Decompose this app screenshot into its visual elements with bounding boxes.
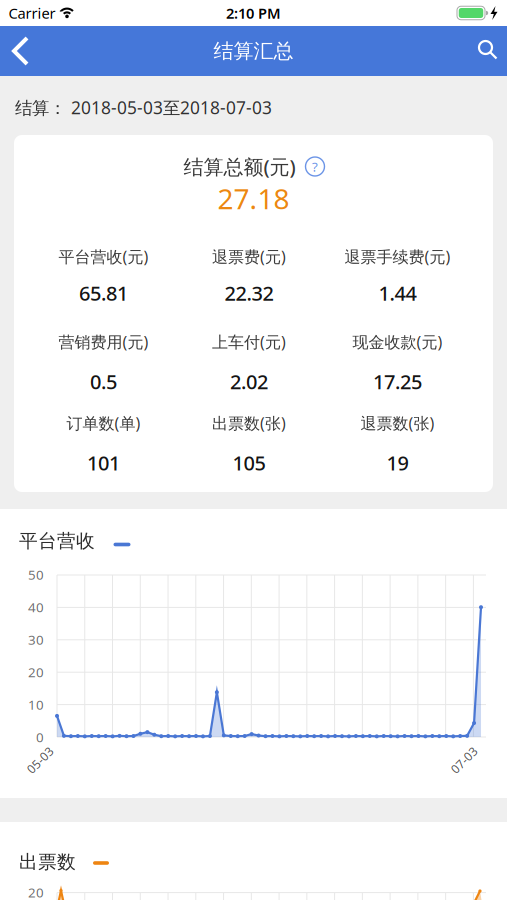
staticText: ? xyxy=(312,158,318,175)
staticText: 结算总额(元) xyxy=(183,153,295,180)
staticText: 退票手续费(元) xyxy=(344,246,450,267)
staticText: 05-03 xyxy=(24,752,56,768)
staticText: 07-03 xyxy=(448,752,480,768)
staticText: 19 xyxy=(386,449,408,476)
staticText: 27.18 xyxy=(217,180,289,217)
staticText: 10 xyxy=(28,696,44,713)
staticText: 平台营收(元) xyxy=(58,246,148,267)
staticText: 结算： 2018-05-03至2018-07-03 xyxy=(15,96,272,119)
staticText: 2:10 PM xyxy=(226,3,281,23)
staticText: 上车付(元) xyxy=(212,331,286,352)
staticText: 2.02 xyxy=(230,368,268,395)
staticText: 105 xyxy=(232,449,265,476)
staticText: 订单数(单) xyxy=(66,412,140,434)
staticText: 退票费(元) xyxy=(212,246,286,267)
staticText: 营销费用(元) xyxy=(58,331,148,352)
staticText: 65.81 xyxy=(79,280,128,306)
staticText: 20 xyxy=(28,883,44,900)
button[interactable]: Help xyxy=(304,156,325,177)
staticText: 退票数(张) xyxy=(360,412,434,434)
staticText: 现金收款(元) xyxy=(352,331,442,352)
staticText: 17.25 xyxy=(373,368,422,395)
staticText: 40 xyxy=(28,598,44,616)
staticText: Carrier xyxy=(8,3,55,23)
staticText: 50 xyxy=(28,566,44,583)
staticText: 0.5 xyxy=(90,368,117,395)
staticText: 0 xyxy=(36,728,44,746)
staticText: 1.44 xyxy=(378,280,416,306)
staticText: 出票数 xyxy=(19,850,76,873)
staticText: 出票数(张) xyxy=(212,412,286,434)
staticText: 30 xyxy=(28,631,44,648)
staticText: 平台营收 xyxy=(19,529,95,552)
staticText: 20 xyxy=(28,663,44,681)
button[interactable]: Back xyxy=(0,26,44,76)
button[interactable]: Search xyxy=(463,26,507,76)
staticText: 101 xyxy=(87,449,120,476)
staticText: 22.32 xyxy=(224,280,273,306)
staticText: 结算汇总 xyxy=(213,39,293,63)
